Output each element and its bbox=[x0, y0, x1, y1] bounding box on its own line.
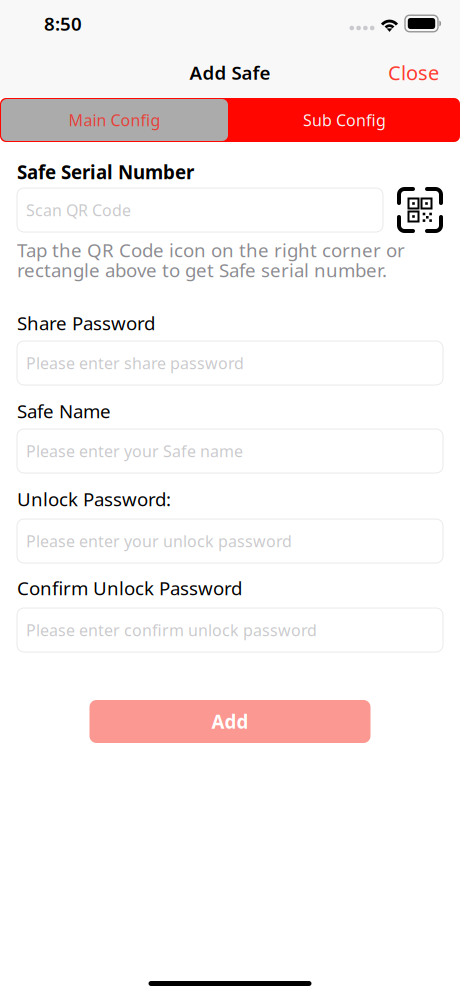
staticText: Unlock Password: bbox=[17, 487, 171, 511]
staticText: Sub Config bbox=[303, 109, 386, 131]
button[interactable]: Sub Config bbox=[229, 98, 460, 142]
staticText: Add Safe bbox=[189, 60, 270, 85]
staticText: Safe Serial Number bbox=[17, 160, 194, 184]
staticText: Main Config bbox=[68, 109, 160, 131]
button[interactable]: Main Config bbox=[0, 98, 229, 142]
staticText: Confirm Unlock Password bbox=[17, 576, 242, 600]
staticText: Share Password bbox=[17, 311, 155, 335]
staticText: Scan QR Code bbox=[26, 199, 131, 221]
staticText: Please enter your unlock password bbox=[26, 530, 292, 552]
staticText: 8:50 bbox=[44, 11, 82, 36]
button[interactable]: Scan QR Code bbox=[397, 187, 443, 233]
staticText: Close bbox=[388, 59, 439, 86]
staticText: Please enter confirm unlock password bbox=[26, 619, 317, 641]
button[interactable]: Add bbox=[89, 700, 370, 743]
staticText: Add bbox=[211, 709, 248, 734]
staticText: Please enter your Safe name bbox=[26, 440, 243, 462]
staticText: rectangle above to get Safe serial numbe… bbox=[17, 258, 387, 282]
button[interactable]: Close bbox=[378, 50, 449, 95]
staticText: Safe Name bbox=[17, 399, 111, 423]
staticText: Tap the QR Code icon on the right corner… bbox=[17, 238, 405, 262]
staticText: Please enter share password bbox=[26, 352, 244, 374]
